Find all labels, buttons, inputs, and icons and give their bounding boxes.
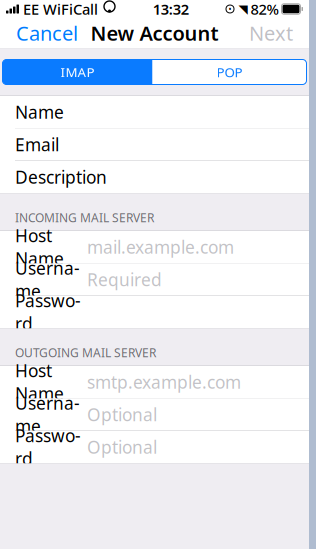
staticText: 82% [250,0,278,19]
staticText: Optional [87,435,157,458]
button[interactable]: Host Name [0,231,309,263]
button[interactable]: Name [0,96,309,128]
staticText: EE WiFiCall [23,0,98,19]
staticText: Username [15,256,80,302]
staticText: smtp.example.com [87,370,241,393]
staticText: Cancel [16,20,78,46]
button[interactable]: IMAP [2,59,152,84]
staticText: Next [249,20,293,46]
staticText: OUTGOING MAIL SERVER [15,345,156,360]
button[interactable]: Password [0,296,309,328]
staticText: New Account [90,20,218,46]
button[interactable]: POP [152,59,306,84]
staticText: POP [216,63,242,81]
staticText: INCOMING MAIL SERVER [15,210,154,225]
button[interactable]: Description [0,161,309,193]
button[interactable]: Host Name [0,366,309,398]
staticText: mail.example.com [87,235,234,258]
button[interactable]: Next [233,18,309,48]
staticText: Host Name [15,224,64,270]
staticText: Description [15,165,107,188]
staticText: Required [87,268,162,291]
staticText: IMAP [60,63,94,81]
button[interactable]: Email [0,128,309,160]
staticText: Name [15,100,64,123]
staticText: Optional [87,403,157,426]
button[interactable]: Password [0,431,309,463]
staticText: • [228,4,231,14]
staticText: Username [15,391,80,437]
staticText: Host Name [15,359,64,405]
button[interactable]: Username [0,263,309,295]
button[interactable]: Username [0,398,309,430]
staticText: 13:32 [153,0,189,19]
button[interactable]: Cancel [0,18,94,48]
staticText: Password [15,424,81,470]
staticText: ◥ [238,2,247,16]
staticText: Password [15,289,81,335]
staticText: Email [15,133,59,156]
